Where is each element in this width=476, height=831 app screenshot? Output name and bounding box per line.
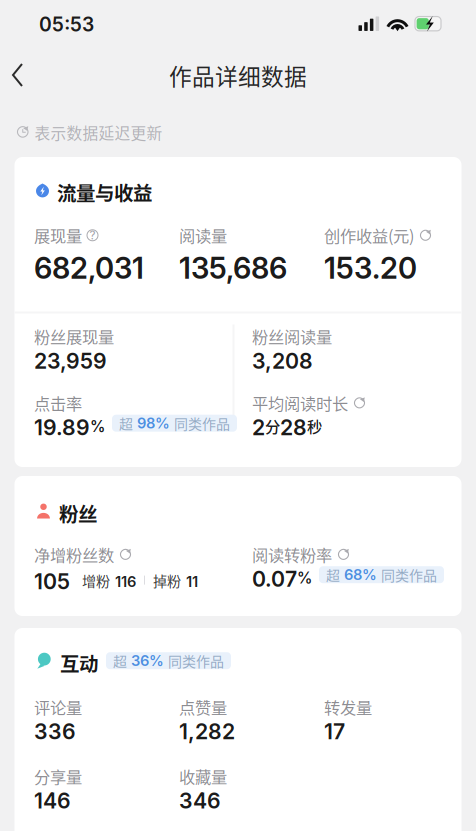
staticText: 19.89 [34,415,90,440]
staticText: 146 [34,788,71,814]
staticText: ? [89,228,95,242]
staticText: 05:53 [39,13,94,36]
button[interactable]: Back [4,52,48,96]
staticText: 评论量 [34,695,82,719]
staticText: 净增粉丝数 [34,543,114,566]
staticText: 粉丝 [59,499,97,527]
staticText: 阅读转粉率 [252,543,332,566]
staticText: 互动 [60,649,98,677]
staticText: 阅读量 [179,223,227,247]
staticText: 1,282 [179,719,235,744]
staticText: % [297,569,312,587]
staticText: 点赞量 [179,695,227,719]
staticText: 68% [344,566,377,583]
staticText: 平均阅读时长 [252,391,348,415]
staticText: 2 [252,415,265,440]
staticText: 36% [131,652,164,669]
staticText: 11 [186,573,198,591]
staticText: 收藏量 [179,764,227,788]
staticText: % [90,417,105,436]
staticText: 展现量 [34,223,82,247]
staticText: 超 [119,413,133,433]
staticText: 粉丝展现量 [34,324,114,348]
staticText: 105 [34,569,70,594]
staticText: 作品详细数据 [169,59,307,92]
staticText: 346 [179,788,221,814]
staticText: 28 [280,415,307,440]
staticText: 超 [113,651,127,671]
staticText: 116 [115,573,136,591]
staticText: 分 [265,415,280,437]
staticText: 秒 [307,415,322,437]
staticText: 掉粉 [153,570,181,591]
staticText: 流量与收益 [57,178,152,206]
staticText: 同类作品 [174,413,230,433]
staticText: 同类作品 [381,565,437,585]
staticText: 98% [137,414,170,432]
staticText: 135,686 [179,250,287,286]
staticText: 17 [324,719,345,744]
staticText: 3,208 [252,348,313,374]
staticText: 分享量 [34,764,82,788]
staticText: 23,959 [34,348,107,374]
staticText: 超 [326,565,340,585]
staticText: 0.07 [252,566,297,592]
staticText: 682,031 [34,250,144,286]
staticText: 同类作品 [168,651,224,671]
staticText: 点击率 [34,391,82,415]
staticText: 153.20 [324,250,417,286]
staticText: 336 [34,719,76,744]
staticText: 表示数据延迟更新 [34,121,162,144]
staticText: 创作收益(元) [324,223,414,247]
staticText: 粉丝阅读量 [252,324,332,348]
staticText: 转发量 [324,695,372,719]
staticText: 增粉 [82,570,110,591]
